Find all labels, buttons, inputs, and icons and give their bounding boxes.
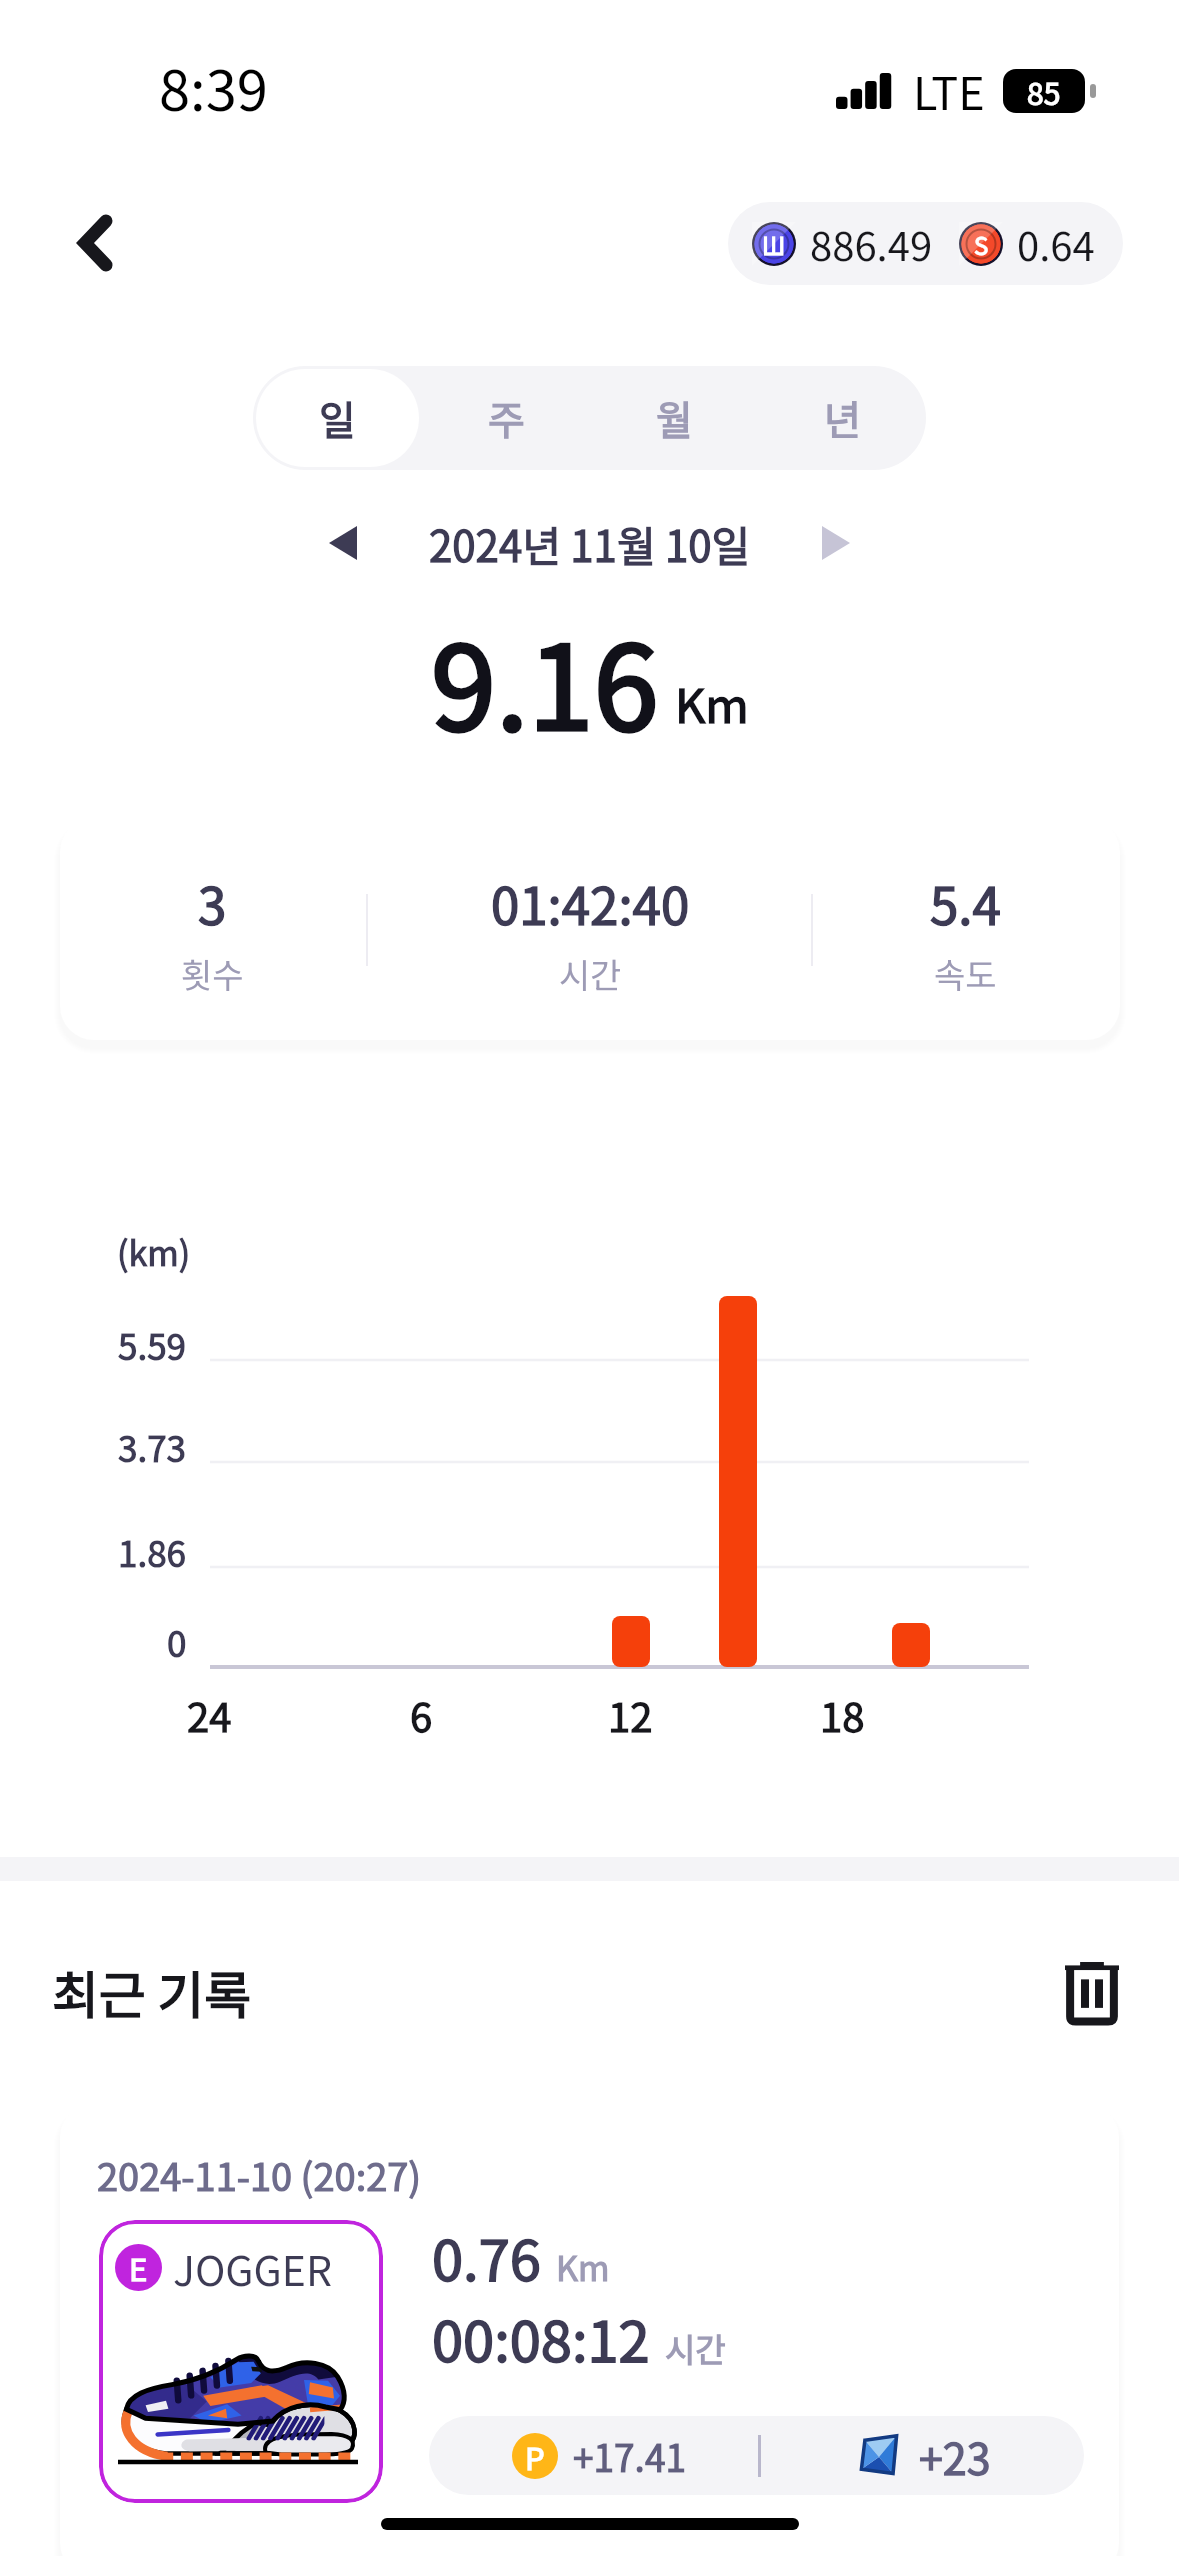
staticText: S [974,227,989,262]
button[interactable]: 년 [761,369,923,467]
staticText: 일 [319,389,356,447]
staticText: 월 [656,389,693,447]
button[interactable]: 2024-11-10 (20:27) [60,2105,1119,2556]
staticText: 8:39 [159,46,268,127]
staticText: LTE [913,58,985,123]
staticText: 886.49 [810,215,933,273]
staticText: 시간 [665,2324,726,2372]
button[interactable]: Delete [1044,1945,1140,2041]
staticText: (km) [117,1227,191,1276]
button[interactable]: 01:42:40 [390,866,790,1006]
staticText: Km [675,668,749,736]
staticText: 속도 [934,949,997,998]
staticText: 0.76 [432,2216,541,2297]
button[interactable]: P [429,2416,1084,2495]
staticText: 9.16 [431,594,659,763]
staticText: Ш [762,227,786,262]
staticText: 85 [1027,70,1061,113]
staticText: 2024년 11월 10일 [429,513,751,574]
button[interactable]: 월 [593,369,755,467]
button[interactable]: Previous day [300,500,386,586]
staticText: 시간 [559,949,622,998]
button[interactable]: 5.4 [765,866,1165,1006]
staticText: 주 [488,389,525,447]
staticText: +17.41 [573,2429,686,2483]
button[interactable]: Back [53,201,137,285]
staticText: 1.86 [118,1526,187,1577]
staticText: P [525,2434,545,2479]
staticText: Km [556,2242,610,2291]
staticText: +23 [919,2425,991,2487]
staticText: 24 [187,1686,232,1738]
staticText: 년 [824,389,861,447]
staticText: 01:42:40 [491,866,690,940]
button[interactable]: Next day [793,500,879,586]
staticText: 횟수 [181,949,244,998]
staticText: 12 [608,1686,653,1738]
staticText: E [129,2245,148,2290]
staticText: 0.64 [1017,215,1095,273]
staticText: 00:08:12 [432,2297,650,2378]
staticText: 5.59 [118,1319,187,1370]
staticText: 2024-11-10 (20:27) [97,2147,422,2202]
staticText: JOGGER [173,2238,333,2297]
staticText: 18 [820,1686,865,1738]
staticText: 6 [410,1686,433,1738]
button[interactable]: Ш [728,202,1123,285]
staticText: 최근 기록 [52,1955,252,2029]
button[interactable]: 3 [12,866,412,1006]
button[interactable]: 일 [256,369,419,467]
staticText: 0 [167,1616,187,1667]
button[interactable]: 주 [425,369,587,467]
staticText: 3 [198,866,227,940]
staticText: 3.73 [118,1421,187,1472]
staticText: 5.4 [930,866,1001,940]
